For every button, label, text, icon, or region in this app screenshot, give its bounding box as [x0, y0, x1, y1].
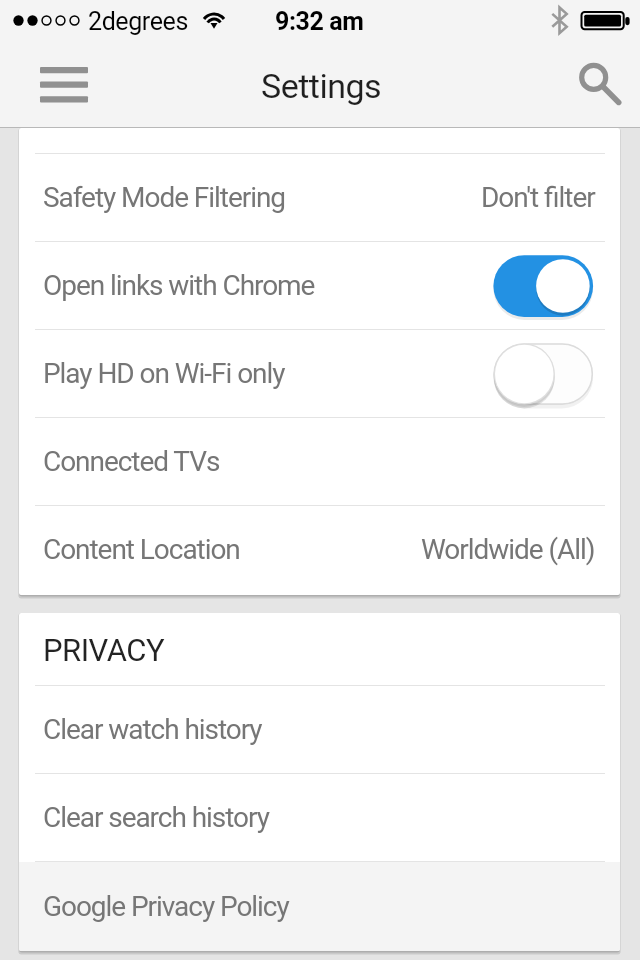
staticText: Worldwide (All)	[421, 533, 595, 566]
button[interactable]: Google Privacy Policy	[19, 862, 620, 951]
staticText: Settings	[261, 66, 382, 106]
button[interactable]: Clear watch history	[19, 686, 620, 773]
staticText: Clear watch history	[43, 713, 262, 746]
button[interactable]: Menu	[0, 45, 118, 128]
button[interactable]: Toggle on	[490, 249, 600, 323]
button[interactable]: Clear search history	[19, 774, 620, 861]
staticText: Open links with Chrome	[43, 269, 315, 302]
button[interactable]: Search	[550, 45, 640, 128]
button[interactable]: Toggle off	[490, 337, 600, 411]
staticText: PRIVACY	[43, 632, 165, 668]
staticText: Don't filter	[481, 181, 595, 214]
staticText: Safety Mode Filtering	[43, 181, 285, 214]
staticText: 9:32 am	[275, 7, 364, 36]
staticText: Clear search history	[43, 801, 269, 834]
button[interactable]: Connected TVs	[19, 418, 620, 505]
staticText: 2degrees	[88, 7, 188, 36]
button[interactable]: Open links with Chrome	[19, 242, 620, 329]
button[interactable]: Content Location	[19, 506, 620, 593]
staticText: Play HD on Wi-Fi only	[43, 357, 285, 390]
staticText: Content Location	[43, 533, 240, 566]
button[interactable]: Play HD on Wi-Fi only	[19, 330, 620, 417]
button[interactable]: Safety Mode Filtering	[19, 154, 620, 241]
staticText: Google Privacy Policy	[43, 890, 289, 923]
staticText: Connected TVs	[43, 445, 220, 478]
